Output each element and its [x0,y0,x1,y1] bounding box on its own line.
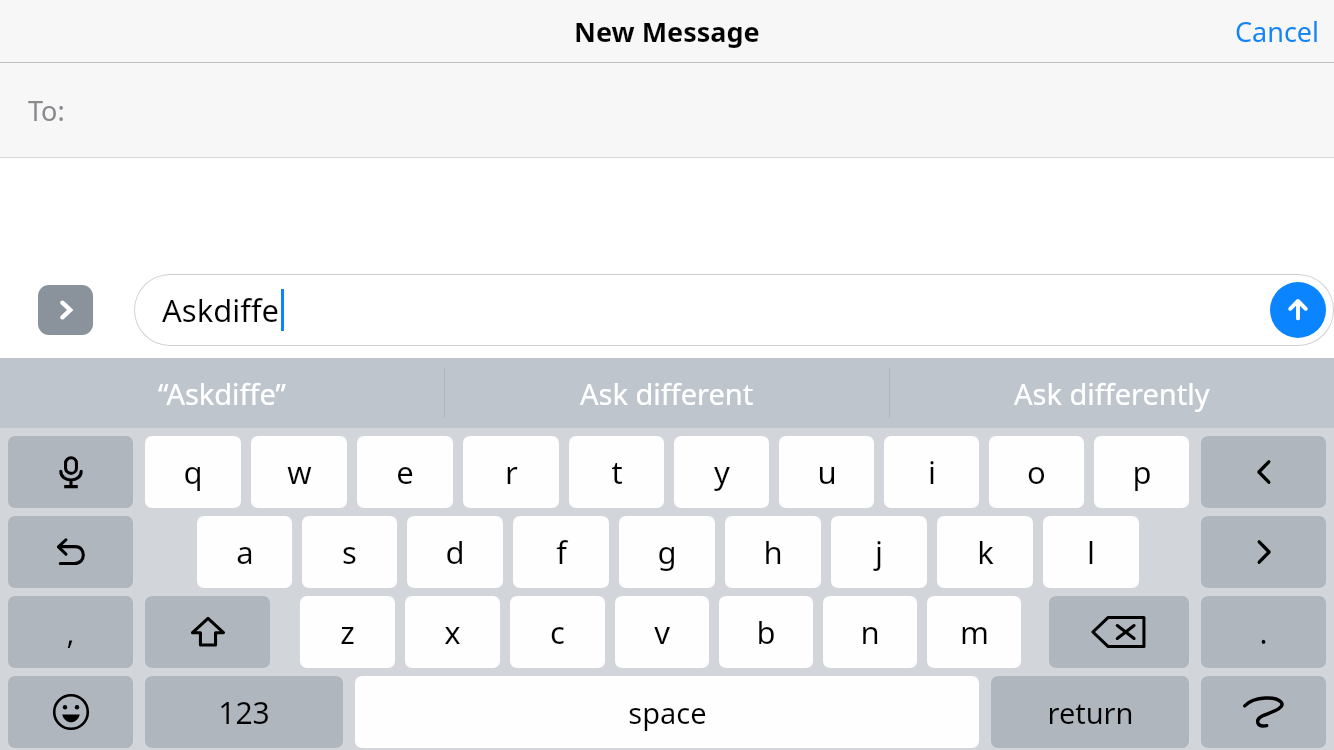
staticText: f [556,531,567,573]
staticText: Ask differently [1014,374,1210,413]
button[interactable]: u [779,436,874,508]
staticText: . [1259,612,1268,653]
staticText: e [396,451,414,493]
staticText: p [1132,451,1152,493]
staticText: k [977,531,994,573]
button[interactable]: e [357,436,453,508]
button[interactable]: Period [1201,596,1326,668]
button[interactable]: y [674,436,769,508]
button[interactable]: Ask differently [890,358,1334,428]
button[interactable]: r [463,436,559,508]
staticText: r [505,451,518,493]
button[interactable]: Handwriting [1201,676,1326,748]
button[interactable]: c [510,596,605,668]
staticText: x [444,611,461,653]
staticText: d [445,531,465,573]
staticText: j [875,531,883,573]
staticText: v [654,611,670,653]
staticText: c [550,611,565,653]
staticText: q [183,451,203,493]
staticText: g [657,531,677,573]
staticText: w [287,451,312,493]
staticText: space [628,693,707,732]
staticText: u [817,451,837,493]
button[interactable]: Emoji [8,676,133,748]
staticText: 123 [218,692,270,733]
staticText: New Message [574,13,760,50]
staticText: To: [28,92,65,129]
button[interactable]: v [615,596,709,668]
button[interactable]: Delete [1049,596,1189,668]
staticText: Ask different [580,374,754,413]
staticText: b [756,611,776,653]
button[interactable]: i [884,436,979,508]
button[interactable]: z [300,596,395,668]
staticText: Cancel [1235,13,1320,50]
button[interactable]: Cancel [1235,0,1320,62]
button[interactable]: Undo [8,516,133,588]
button[interactable]: o [989,436,1084,508]
staticText: i [928,451,936,493]
button[interactable]: m [927,596,1021,668]
button[interactable]: Askdiffe [134,274,1334,346]
button[interactable]: Shift [145,596,270,668]
button[interactable]: space [355,676,979,748]
staticText: n [860,611,880,653]
button[interactable]: n [823,596,917,668]
button[interactable]: w [251,436,347,508]
staticText: h [763,531,783,573]
staticText: l [1087,531,1095,573]
staticText: y [714,451,730,493]
staticText: t [611,451,623,493]
staticText: z [340,611,355,653]
button[interactable]: b [719,596,813,668]
staticText: “Askdiffe” [158,374,287,413]
staticText: o [1027,451,1046,493]
button[interactable]: a [197,516,292,588]
button[interactable]: l [1043,516,1139,588]
button[interactable]: return [991,676,1189,748]
button[interactable]: p [1094,436,1189,508]
button[interactable]: Comma [8,596,133,668]
button[interactable]: x [405,596,500,668]
staticText: Askdiffe [162,289,280,331]
button[interactable]: “Askdiffe” [0,358,444,428]
staticText: m [960,611,989,653]
button[interactable]: d [407,516,503,588]
button[interactable]: h [725,516,821,588]
staticText: a [236,531,254,573]
button[interactable]: Send [1270,282,1326,338]
button[interactable]: k [937,516,1033,588]
button[interactable]: Ask different [445,358,889,428]
button[interactable]: Dictate [8,436,133,508]
button[interactable]: j [831,516,927,588]
button[interactable]: t [569,436,664,508]
button[interactable]: Next [1201,516,1326,588]
button[interactable]: s [302,516,397,588]
button[interactable]: q [145,436,241,508]
button[interactable]: Numbers [145,676,343,748]
button[interactable]: More options [38,285,93,335]
staticText: s [342,531,357,573]
button[interactable]: To: [0,63,1334,157]
button[interactable]: Previous [1201,436,1326,508]
staticText: , [66,612,75,653]
button[interactable]: f [513,516,609,588]
button[interactable]: g [619,516,715,588]
staticText: return [1047,693,1134,732]
